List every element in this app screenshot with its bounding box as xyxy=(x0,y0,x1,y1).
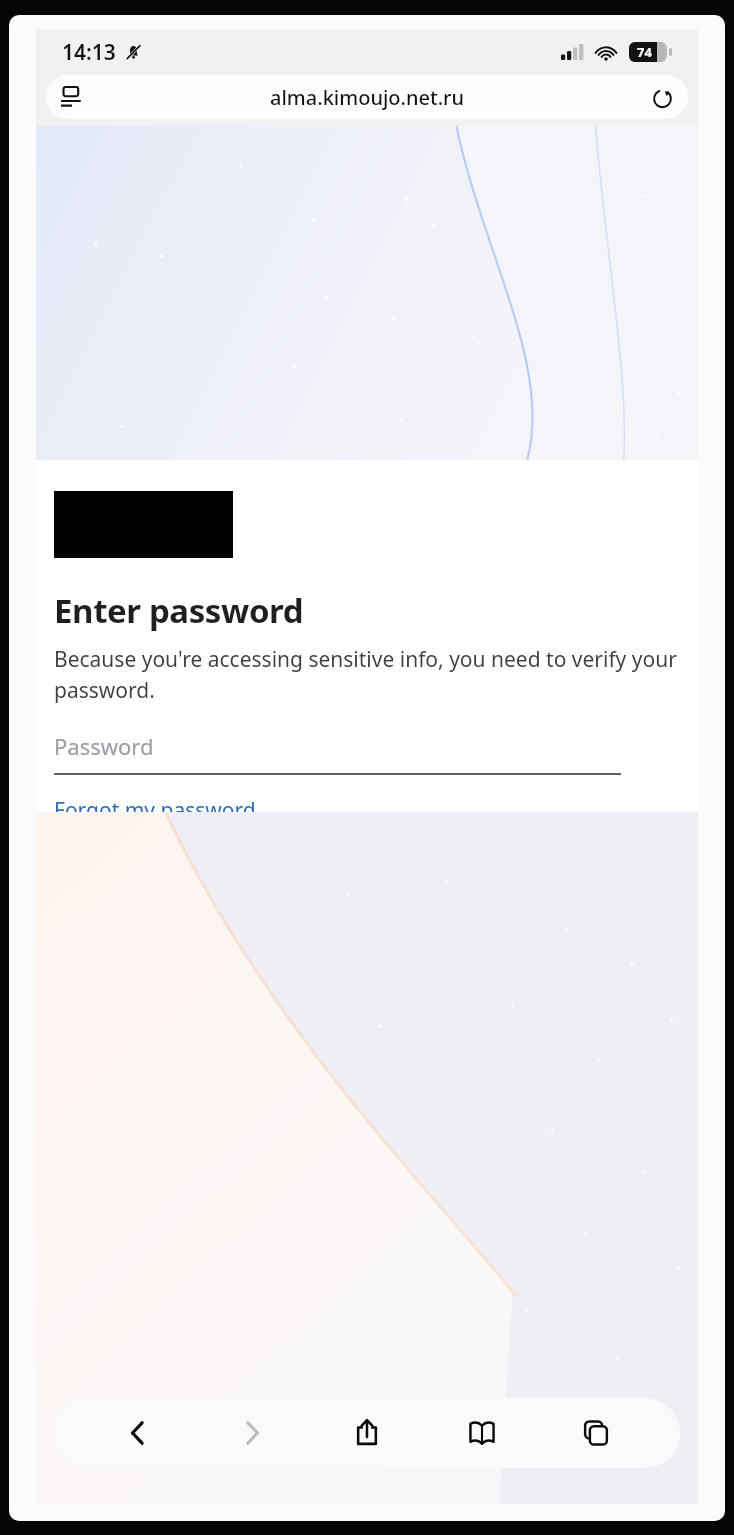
button[interactable]: Forgot my password xyxy=(54,796,256,812)
button[interactable]: Back xyxy=(107,1402,169,1464)
staticText: 74 xyxy=(637,43,652,61)
staticText: Because you're accessing sensitive info,… xyxy=(54,645,680,704)
button[interactable]: Password xyxy=(54,731,621,775)
button[interactable]: Reload xyxy=(642,77,682,117)
button[interactable]: Share xyxy=(336,1402,398,1464)
staticText: Forgot my password xyxy=(54,796,256,812)
staticText: Enter password xyxy=(54,588,304,633)
staticText: alma.kimoujo.net.ru xyxy=(270,84,465,111)
staticText: KERRY xyxy=(55,478,195,539)
button[interactable]: Page settings xyxy=(51,77,91,117)
staticText: Password xyxy=(54,731,154,761)
button[interactable]: Bookmarks xyxy=(451,1402,513,1464)
staticText: 14:13 xyxy=(62,38,116,67)
button[interactable]: Forward xyxy=(221,1402,283,1464)
button[interactable]: Tabs xyxy=(565,1402,627,1464)
